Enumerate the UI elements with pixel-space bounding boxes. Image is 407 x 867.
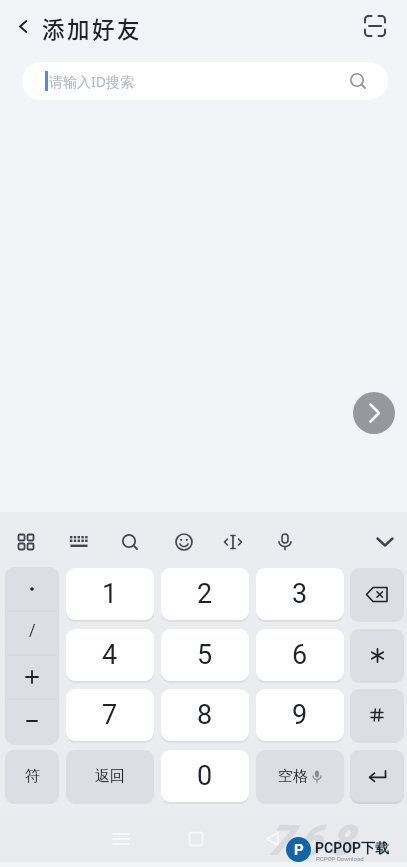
button[interactable] [369, 526, 401, 558]
button[interactable] [350, 689, 404, 741]
button[interactable]: 3 [256, 568, 344, 620]
button[interactable]: 4 [66, 629, 154, 681]
staticText: 9 [292, 699, 308, 731]
button[interactable] [360, 11, 390, 41]
button[interactable]: 5 [161, 629, 249, 681]
button[interactable]: 7 [66, 689, 154, 741]
button[interactable] [350, 750, 404, 802]
button[interactable] [176, 819, 216, 859]
staticText: / [29, 621, 36, 640]
button[interactable] [350, 750, 404, 802]
button[interactable]: 返回 [66, 750, 154, 802]
button[interactable] [101, 819, 141, 859]
button[interactable]: 9 [256, 689, 344, 741]
staticText: 7 [102, 699, 118, 731]
button[interactable] [252, 819, 292, 859]
staticText: 返回 [95, 767, 125, 786]
button[interactable] [168, 526, 200, 558]
staticText: 3 [292, 578, 308, 610]
button[interactable]: / [5, 567, 59, 743]
staticText: PCPOP Download [316, 855, 364, 862]
button[interactable] [114, 526, 146, 558]
button[interactable]: 2 [161, 568, 249, 620]
staticText: 添加好友 [42, 12, 143, 45]
button[interactable]: 空格 [256, 750, 344, 802]
button[interactable] [269, 526, 301, 558]
button[interactable] [353, 392, 395, 434]
staticText: 请输入ID搜索 [49, 72, 134, 91]
button[interactable]: 1 [66, 568, 154, 620]
button[interactable] [350, 568, 404, 620]
staticText: 5 [197, 639, 213, 671]
staticText: 空格 [278, 767, 308, 786]
staticText: 6 [292, 639, 308, 671]
staticText: 0 [197, 760, 213, 792]
staticText: 768 [268, 816, 360, 865]
button[interactable]: 0 [161, 750, 249, 802]
button[interactable] [350, 629, 404, 681]
staticText: 4 [102, 639, 118, 671]
staticText: P [294, 841, 304, 859]
button[interactable] [10, 526, 42, 558]
staticText: 2 [197, 578, 213, 610]
button[interactable]: 6 [256, 629, 344, 681]
button[interactable]: 8 [161, 689, 249, 741]
button[interactable] [217, 526, 249, 558]
button[interactable]: 请输入ID搜索 [22, 62, 388, 100]
staticText: 8 [197, 699, 213, 731]
button[interactable] [10, 14, 36, 39]
staticText: PCPOP下载 [315, 840, 389, 858]
staticText: 符 [25, 767, 40, 786]
button[interactable]: 符 [5, 750, 59, 802]
staticText: 1 [102, 578, 118, 610]
button[interactable] [63, 526, 95, 558]
